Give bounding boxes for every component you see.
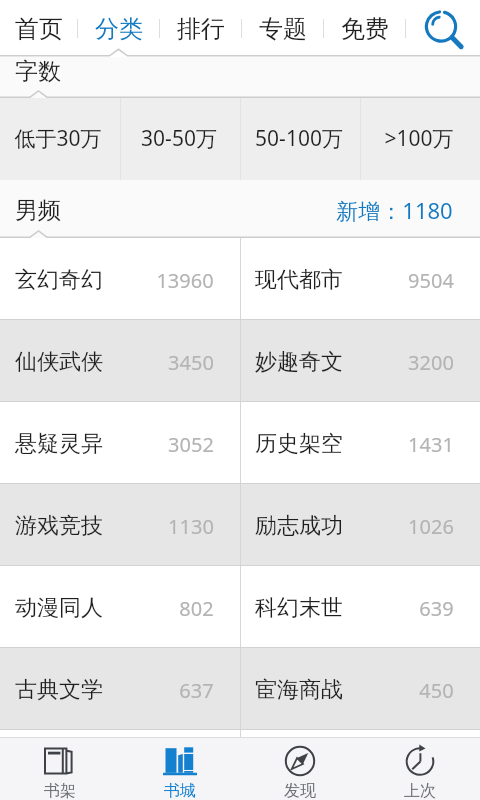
staticText: 书架 [44, 781, 76, 800]
staticText: 游戏竞技 [15, 512, 103, 540]
staticText: 历史架空 [255, 430, 343, 458]
staticText: 分类 [95, 14, 143, 44]
staticText: 首页 [15, 14, 63, 44]
button[interactable]: 上次 [360, 738, 480, 800]
staticText: 639 [419, 595, 454, 622]
button[interactable]: 50-100万 [241, 98, 360, 180]
button[interactable]: 妙趣奇文 [240, 320, 480, 402]
button[interactable]: 仙侠武侠 [0, 320, 240, 402]
staticText: 悬疑灵异 [15, 430, 103, 458]
staticText: 现代都市 [255, 266, 343, 294]
staticText: 637 [179, 677, 214, 704]
staticText: 男频 [15, 196, 61, 225]
button[interactable]: 免费 [324, 0, 405, 57]
staticText: 新增：1180 [336, 195, 453, 225]
staticText: 1026 [408, 513, 454, 540]
staticText: 字数 [15, 57, 61, 86]
button[interactable]: 科幻末世 [240, 566, 480, 648]
button[interactable]: 古典文学 [0, 648, 240, 730]
button[interactable]: 排行 [160, 0, 241, 57]
button[interactable]: 悬疑灵异 [0, 402, 240, 484]
button[interactable]: 游戏竞技 [0, 484, 240, 566]
staticText: 低于30万 [14, 124, 102, 153]
button[interactable]: 书架 [0, 738, 120, 800]
button[interactable]: 动漫同人 [0, 566, 240, 648]
button[interactable]: 现代都市 [240, 238, 480, 320]
button[interactable]: 宦海商战 [240, 648, 480, 730]
staticText: 仙侠武侠 [15, 348, 103, 376]
staticText: 免费 [341, 14, 389, 44]
button[interactable]: Search [406, 0, 480, 57]
button[interactable]: >100万 [361, 98, 480, 180]
staticText: 古典文学 [15, 676, 103, 704]
button[interactable]: 发现 [240, 738, 360, 800]
staticText: 30-50万 [141, 124, 217, 153]
button[interactable]: 首页 [0, 0, 77, 57]
staticText: 书城 [164, 781, 196, 800]
staticText: 动漫同人 [15, 594, 103, 622]
button[interactable]: 励志成功 [240, 484, 480, 566]
staticText: 50-100万 [255, 124, 343, 153]
staticText: 玄幻奇幻 [15, 266, 103, 294]
staticText: 3200 [408, 349, 454, 376]
staticText: 专题 [259, 14, 307, 44]
staticText: 排行 [177, 14, 225, 44]
button[interactable]: 历史架空 [240, 402, 480, 484]
button[interactable]: 30-50万 [121, 98, 240, 180]
staticText: >100万 [384, 124, 454, 153]
staticText: 13960 [156, 267, 214, 294]
button[interactable]: 分类 [78, 0, 159, 57]
staticText: 1431 [408, 431, 454, 458]
staticText: 科幻末世 [255, 594, 343, 622]
staticText: 发现 [284, 781, 316, 800]
staticText: 9504 [408, 267, 454, 294]
button[interactable]: 专题 [242, 0, 323, 57]
staticText: 励志成功 [255, 512, 343, 540]
staticText: 802 [179, 595, 214, 622]
staticText: 妙趣奇文 [255, 348, 343, 376]
staticText: 3450 [168, 349, 214, 376]
button[interactable]: 低于30万 [0, 98, 120, 180]
button[interactable]: 玄幻奇幻 [0, 238, 240, 320]
staticText: 3052 [168, 431, 214, 458]
staticText: 上次 [404, 781, 436, 800]
staticText: 450 [419, 677, 454, 704]
staticText: 1130 [168, 513, 214, 540]
button[interactable]: 书城 [120, 738, 240, 800]
staticText: 宦海商战 [255, 676, 343, 704]
